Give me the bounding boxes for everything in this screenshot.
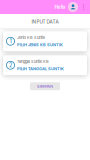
staticText: 1 bbox=[9, 38, 11, 45]
staticText: Hello bbox=[54, 4, 65, 10]
button[interactable]: SIMPAN bbox=[30, 82, 60, 90]
staticText: 2 bbox=[9, 62, 12, 69]
staticText: PILIH TANGGAL SUNTIK bbox=[17, 66, 64, 71]
button[interactable]: Profile bbox=[65, 2, 78, 12]
staticText: Tanggal Suntik KB bbox=[17, 59, 49, 64]
button[interactable]: 1 bbox=[3, 31, 87, 51]
staticText: SIMPAN bbox=[37, 84, 53, 89]
staticText: INPUT DATA bbox=[31, 19, 58, 25]
staticText: PILIH JENIS KB SUNTIK bbox=[17, 42, 63, 47]
button[interactable]: More options bbox=[78, 0, 89, 14]
button[interactable]: 2 bbox=[3, 55, 87, 75]
staticText: Jenis KB Suntik bbox=[17, 35, 45, 40]
